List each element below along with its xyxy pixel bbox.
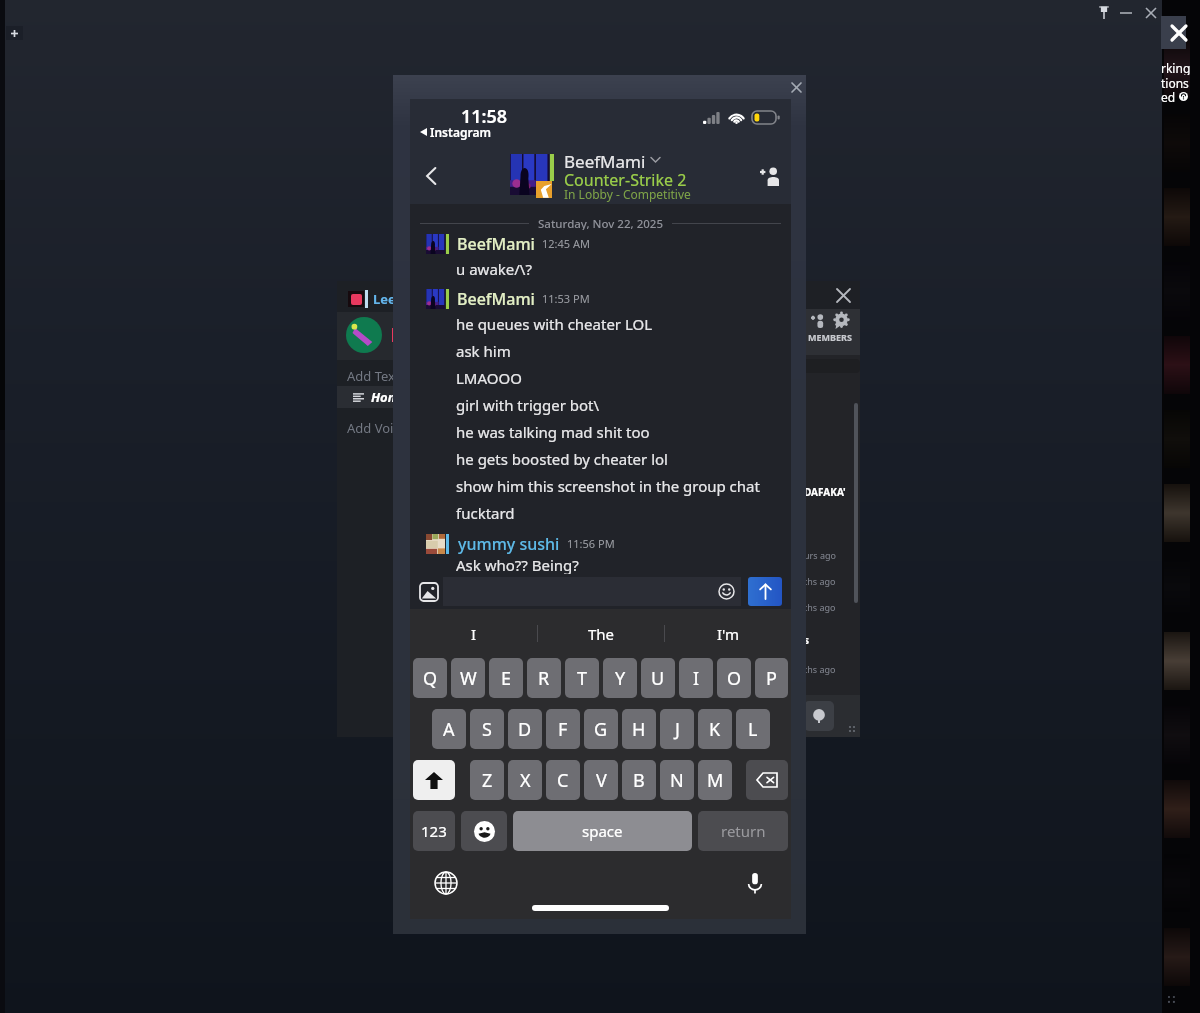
staticText: I bbox=[693, 666, 700, 691]
button[interactable]: R bbox=[527, 658, 561, 698]
staticText: urs ago bbox=[804, 549, 836, 561]
staticText: Add Text bbox=[347, 367, 404, 385]
staticText: A bbox=[443, 717, 455, 742]
staticText: W bbox=[460, 666, 477, 691]
button[interactable]: Send bbox=[748, 577, 782, 606]
button[interactable]: J bbox=[660, 709, 694, 749]
button[interactable]: K bbox=[698, 709, 732, 749]
button[interactable]: Pin bbox=[804, 701, 834, 731]
staticText: N bbox=[670, 768, 684, 793]
button[interactable]: Q bbox=[413, 658, 447, 698]
staticText: BeefMami bbox=[564, 150, 646, 169]
staticText: MEMBERS bbox=[808, 331, 852, 343]
button[interactable]: space bbox=[513, 811, 692, 851]
button[interactable]: C bbox=[546, 760, 580, 800]
button[interactable]: S bbox=[470, 709, 504, 749]
button[interactable]: Dismiss bbox=[1161, 16, 1186, 49]
staticText: F bbox=[558, 717, 568, 742]
button[interactable]: MEMBERS bbox=[800, 309, 860, 355]
staticText: Counter-Strike 2 bbox=[564, 169, 687, 186]
button[interactable]: Add friend bbox=[749, 147, 791, 204]
button[interactable]: Close window bbox=[786, 77, 806, 97]
staticText: M bbox=[707, 768, 724, 793]
button[interactable]: Home bbox=[337, 386, 457, 408]
staticText: LMAOOO bbox=[456, 368, 522, 388]
button[interactable]: O bbox=[717, 658, 751, 698]
button[interactable]: D bbox=[508, 709, 542, 749]
button[interactable]: Close bbox=[1143, 5, 1159, 21]
staticText: Ask who?? Being? bbox=[456, 555, 579, 574]
button[interactable]: U bbox=[641, 658, 675, 698]
staticText: u awake/\? bbox=[456, 259, 532, 279]
button[interactable]: L bbox=[736, 709, 770, 749]
staticText: P bbox=[766, 666, 777, 691]
button[interactable]: Add bbox=[6, 26, 23, 40]
button[interactable]: 123 bbox=[413, 811, 455, 851]
button[interactable]: V bbox=[584, 760, 618, 800]
button[interactable]: Leeti bbox=[348, 290, 406, 308]
button[interactable]: Back bbox=[410, 147, 452, 204]
button[interactable]: X bbox=[508, 760, 542, 800]
button[interactable]: Minimize bbox=[1118, 6, 1134, 20]
staticText: tions bbox=[1161, 75, 1189, 89]
button[interactable]: I bbox=[410, 609, 537, 658]
button[interactable]: Add Text bbox=[337, 365, 457, 387]
button[interactable]: T bbox=[565, 658, 599, 698]
staticText: space bbox=[582, 821, 623, 841]
staticText: 123 bbox=[421, 821, 447, 841]
staticText: X bbox=[520, 768, 531, 793]
staticText: ed bbox=[1161, 89, 1179, 103]
button[interactable]: E bbox=[489, 658, 523, 698]
staticText: Z bbox=[482, 768, 493, 793]
button[interactable]: W bbox=[451, 658, 485, 698]
button[interactable]: Backspace bbox=[746, 760, 788, 800]
button[interactable]: A bbox=[432, 709, 466, 749]
button[interactable]: G bbox=[584, 709, 618, 749]
button[interactable]: Emoji bbox=[461, 811, 507, 851]
button[interactable]: Pin window bbox=[1098, 5, 1110, 19]
button[interactable]: return bbox=[698, 811, 788, 851]
button[interactable]: Y bbox=[603, 658, 637, 698]
button[interactable]: Dictate bbox=[740, 868, 770, 898]
button[interactable] bbox=[337, 312, 457, 360]
button[interactable]: Close panel bbox=[832, 283, 856, 307]
staticText: s bbox=[804, 633, 810, 647]
button[interactable]: B bbox=[622, 760, 656, 800]
button[interactable]: Add Voice bbox=[337, 417, 457, 439]
staticText: Home bbox=[371, 388, 407, 406]
button[interactable]: Shift bbox=[413, 760, 455, 800]
staticText: fucktard bbox=[456, 503, 515, 523]
staticText: BeefMami bbox=[457, 233, 535, 255]
staticText: E bbox=[501, 666, 512, 691]
staticText: ths ago bbox=[804, 601, 836, 613]
staticText: D bbox=[518, 717, 532, 742]
button[interactable]: I bbox=[679, 658, 713, 698]
staticText: The bbox=[588, 624, 615, 644]
staticText: K bbox=[709, 717, 721, 742]
button[interactable]: Change keyboard bbox=[431, 868, 461, 898]
staticText: Add Voice bbox=[347, 419, 408, 437]
staticText: he queues with cheater LOL bbox=[456, 314, 653, 334]
staticText: J bbox=[675, 717, 680, 742]
staticText: B bbox=[633, 768, 645, 793]
staticText: 11:58 bbox=[461, 104, 508, 129]
button[interactable]: H bbox=[622, 709, 656, 749]
button[interactable]: F bbox=[546, 709, 580, 749]
button[interactable]: Z bbox=[470, 760, 504, 800]
button[interactable]: Attach image bbox=[417, 580, 441, 604]
staticText: return bbox=[721, 821, 766, 841]
staticText: O bbox=[727, 666, 742, 691]
button[interactable]: M bbox=[698, 760, 732, 800]
button[interactable]: N bbox=[660, 760, 694, 800]
staticText: he was talking mad shit too bbox=[456, 422, 650, 442]
staticText: V bbox=[596, 768, 607, 793]
staticText: ths ago bbox=[804, 663, 836, 675]
staticText: I bbox=[471, 624, 477, 644]
staticText: U bbox=[651, 666, 665, 691]
button[interactable]: The bbox=[538, 609, 664, 658]
staticText: G bbox=[594, 717, 608, 742]
button[interactable]: I'm bbox=[665, 609, 791, 658]
staticText: Instagram bbox=[430, 124, 491, 140]
staticText: C bbox=[557, 768, 569, 793]
button[interactable]: P bbox=[755, 658, 788, 698]
